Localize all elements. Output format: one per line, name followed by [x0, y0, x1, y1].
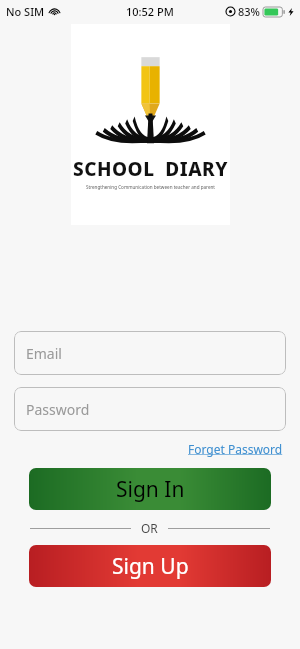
staticText: 10:52 PM	[126, 4, 174, 19]
staticText: OR	[141, 520, 158, 536]
staticText: Forget Password	[188, 441, 283, 457]
button[interactable]: Forget Password	[186, 439, 285, 459]
staticText: SCHOOL DIARY	[73, 156, 228, 182]
button[interactable]: Password	[14, 387, 286, 431]
button[interactable]: Sign In	[29, 468, 271, 510]
staticText: 83%	[238, 4, 260, 19]
staticText: No SIM	[6, 4, 45, 19]
button[interactable]: Email	[14, 331, 286, 375]
staticText: Sign Up	[112, 552, 189, 581]
staticText: Strengthening Communication between teac…	[86, 184, 215, 190]
staticText: Password	[26, 400, 90, 419]
staticText: Email	[26, 344, 62, 363]
staticText: Sign In	[116, 475, 185, 504]
button[interactable]: Sign Up	[29, 545, 271, 587]
